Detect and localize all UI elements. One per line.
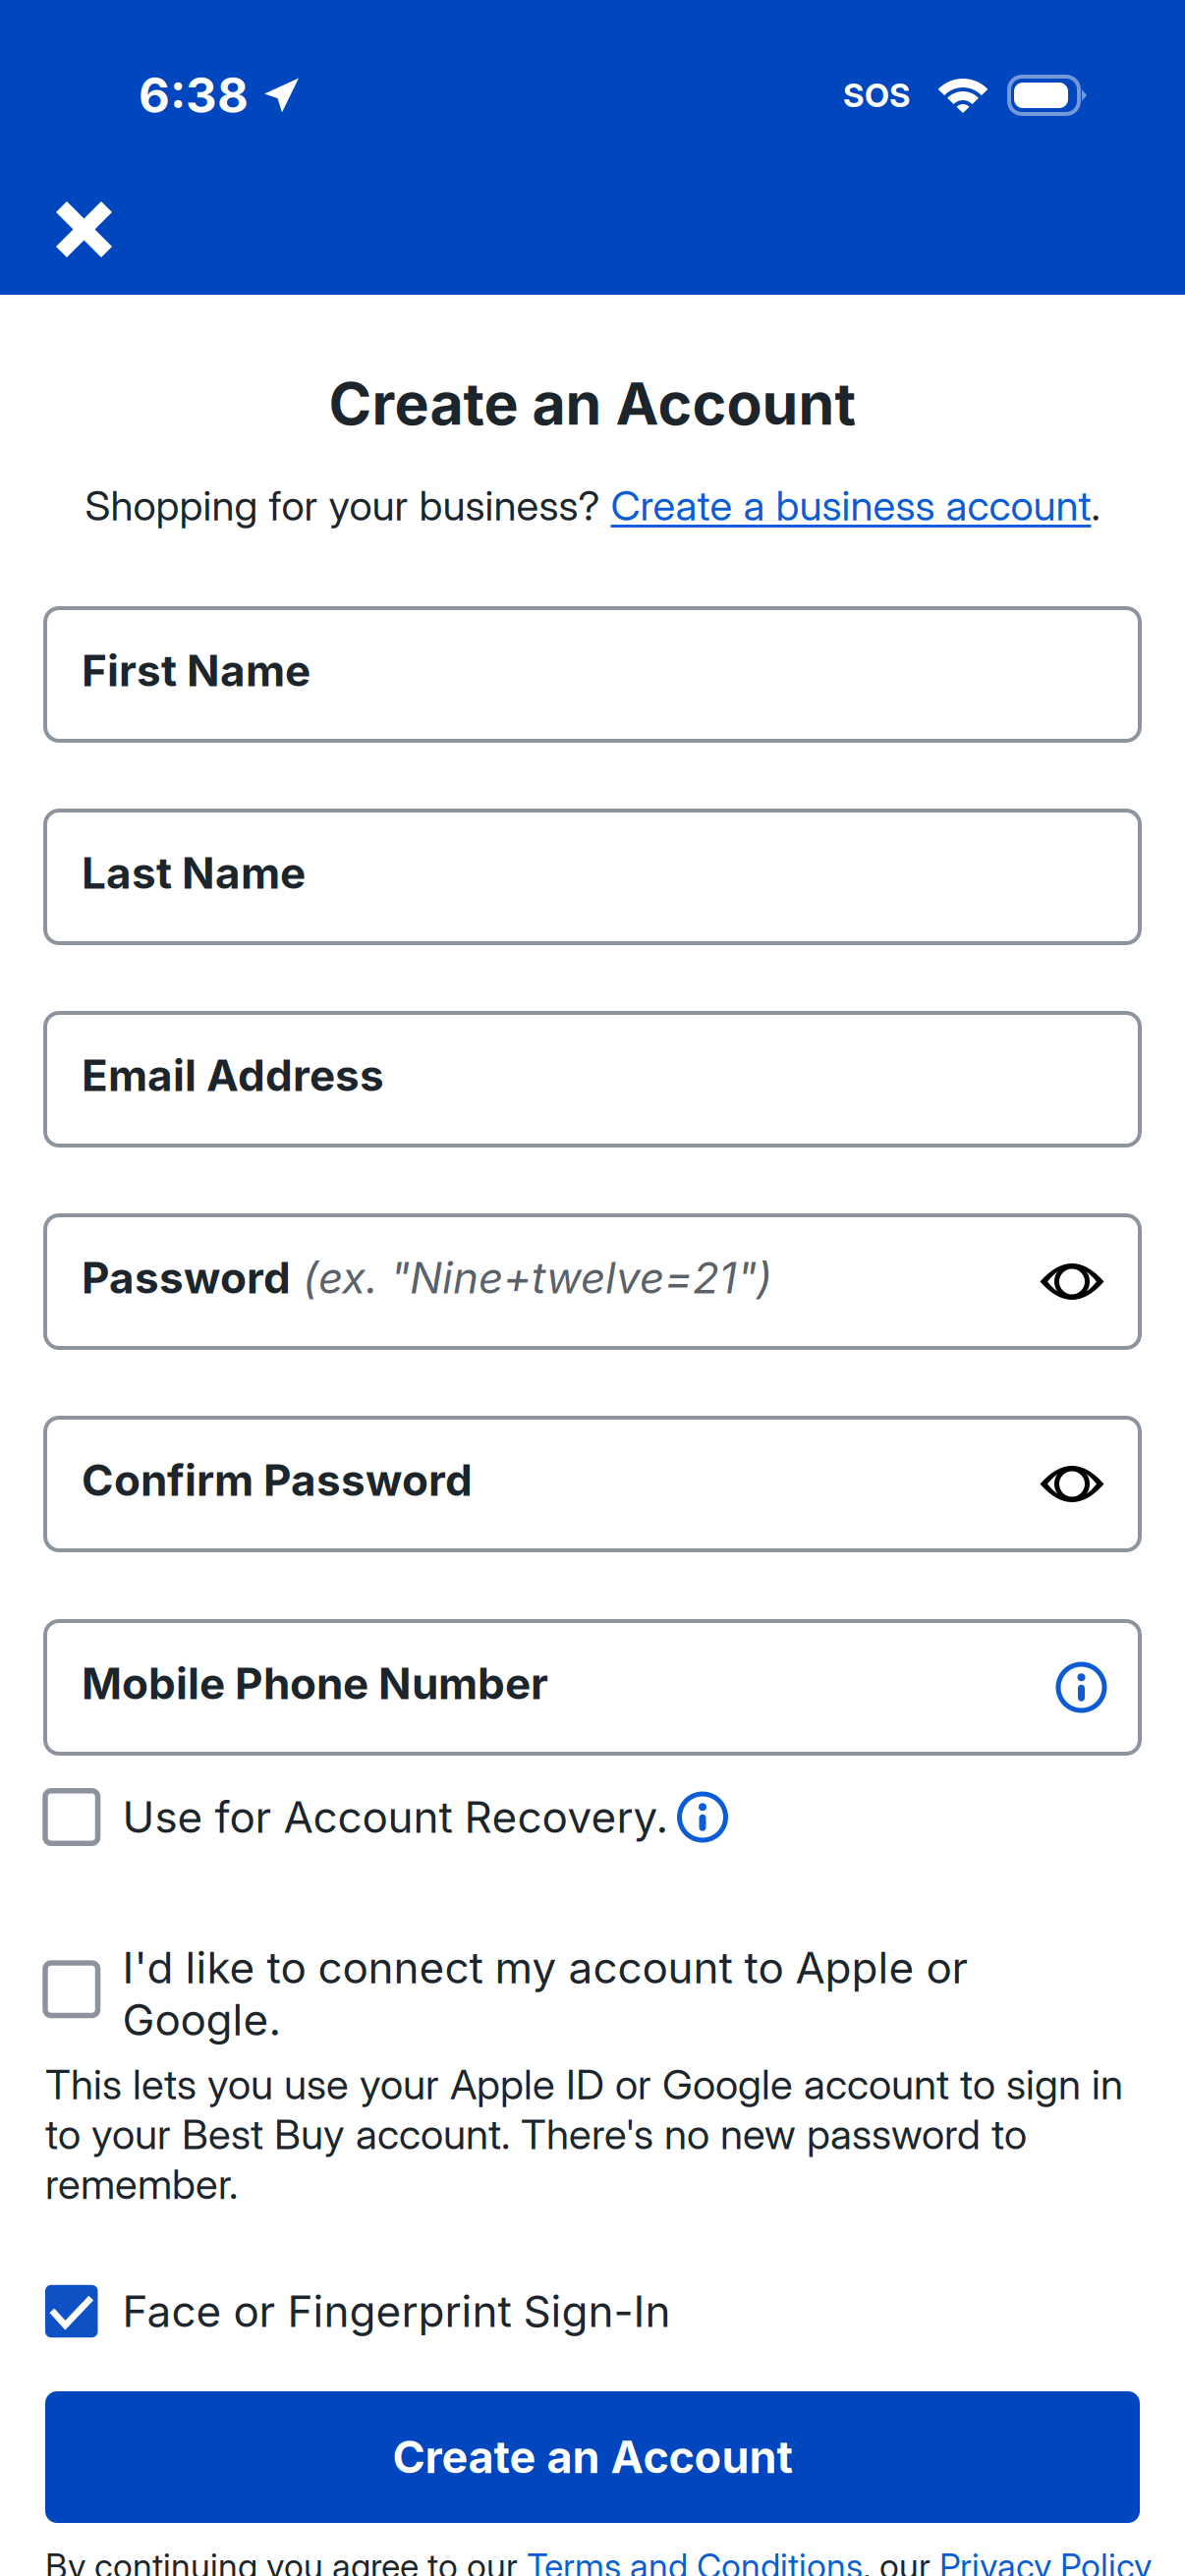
staticText: Create an Account	[329, 368, 856, 439]
button[interactable]: Face or Fingerprint Sign-In	[45, 2285, 1140, 2337]
button[interactable]: Mobile Phone Number	[45, 1621, 1140, 1754]
staticText: Create an Account	[393, 2430, 792, 2484]
button[interactable]: First Name	[45, 608, 1140, 741]
staticText: Use for Account Recovery.	[122, 1791, 669, 1843]
staticText: 6:38	[139, 66, 249, 124]
button[interactable]: Create an Account	[45, 2391, 1140, 2523]
staticText: Email Address	[82, 1049, 384, 1101]
button[interactable]: Password	[45, 1215, 1140, 1348]
staticText: Terms and Conditions	[527, 2546, 863, 2576]
staticText: , our	[863, 2546, 939, 2576]
staticText: This lets you use your Apple ID or Googl…	[45, 2059, 1123, 2209]
staticText: Last Name	[82, 847, 306, 899]
button[interactable]: Close	[56, 201, 112, 257]
button[interactable]: Last Name	[45, 811, 1140, 943]
staticText: (ex. "Nine+twelve=21")	[291, 1252, 772, 1304]
button[interactable]: Use for Account Recovery.	[45, 1791, 1140, 1843]
staticText: Mobile Phone Number	[82, 1657, 548, 1710]
staticText: Shopping for your business?	[85, 480, 611, 530]
staticText: Face or Fingerprint Sign-In	[122, 2285, 671, 2337]
staticText: Password	[82, 1252, 291, 1304]
staticText: Create a business account	[611, 480, 1091, 530]
button[interactable]: Confirm Password	[45, 1418, 1140, 1550]
staticText: SOS	[843, 76, 911, 115]
staticText: .	[1091, 480, 1100, 530]
staticText: By continuing you agree to our	[45, 2546, 527, 2576]
button[interactable]: Create a business account	[611, 480, 1091, 530]
button[interactable]: Terms and Conditions	[527, 2546, 863, 2576]
staticText: First Name	[82, 644, 310, 697]
button[interactable]: I'd like to connect my account to Apple …	[45, 1941, 1140, 2046]
staticText: Privacy Policy	[939, 2546, 1152, 2576]
button[interactable]: Privacy Policy	[939, 2546, 1152, 2576]
staticText: Confirm Password	[82, 1454, 473, 1506]
staticText: I'd like to connect my account to Apple …	[122, 1941, 968, 2046]
button[interactable]: Email Address	[45, 1013, 1140, 1146]
